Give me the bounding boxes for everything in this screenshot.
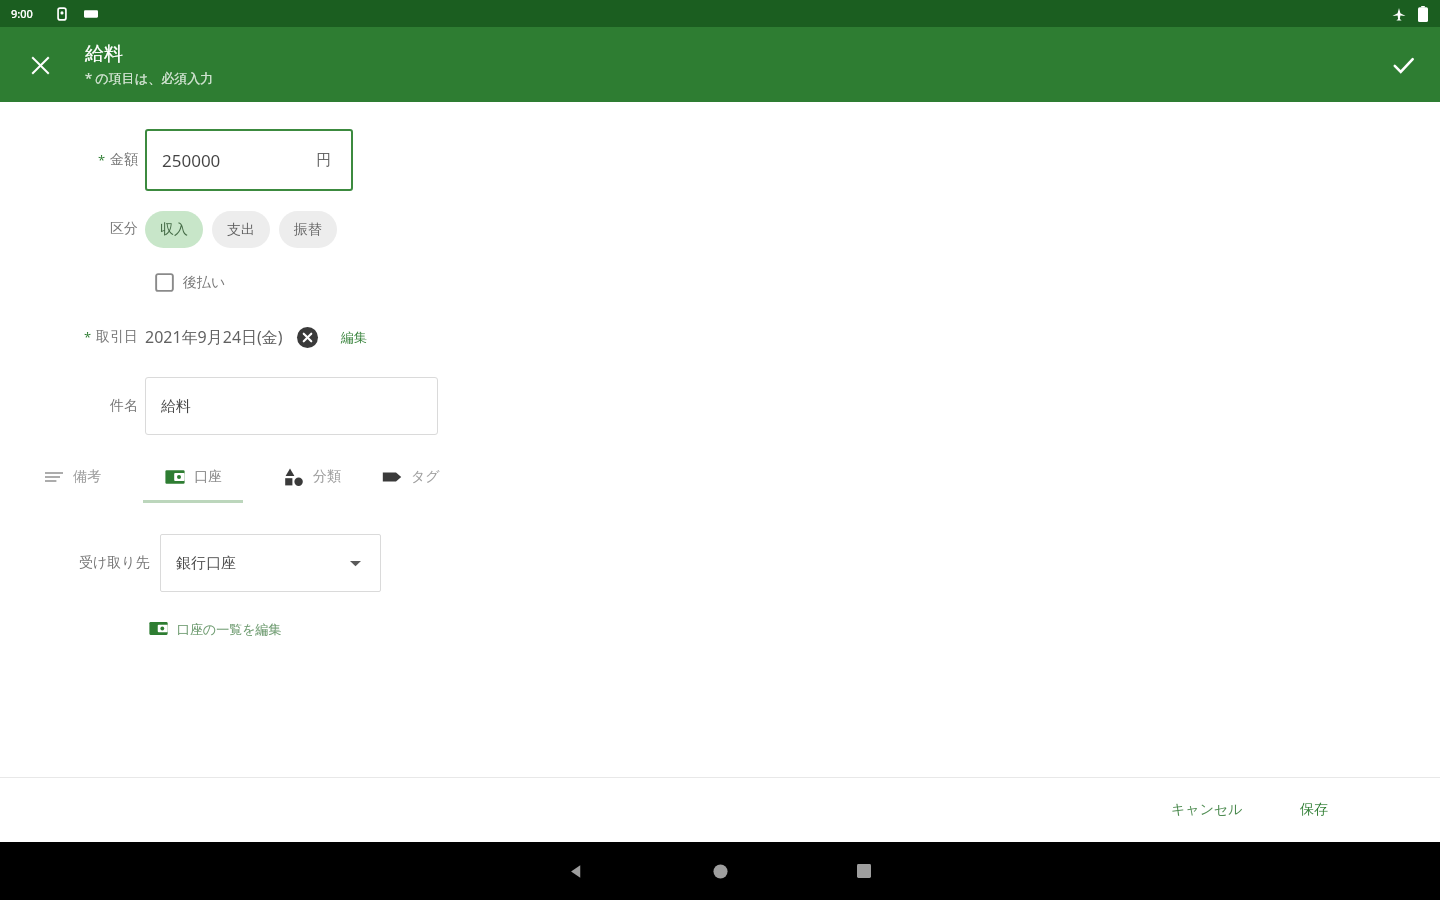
- staticText: 250000: [162, 149, 221, 172]
- staticText: 収入: [160, 221, 188, 239]
- staticText: 金額: [110, 151, 138, 169]
- button[interactable]: 備考: [42, 463, 103, 491]
- staticText: * の項目は、必須入力: [85, 69, 214, 87]
- button[interactable]: キャンセル: [1157, 791, 1257, 829]
- button[interactable]: 口座: [163, 463, 224, 491]
- staticText: 保存: [1300, 801, 1328, 819]
- staticText: 円: [316, 151, 331, 170]
- staticText: 口座: [194, 468, 222, 486]
- staticText: 給料: [85, 42, 123, 66]
- button[interactable]: 2021年9月24日(金): [145, 326, 283, 348]
- button[interactable]: Save: [1380, 42, 1426, 88]
- staticText: 件名: [110, 397, 138, 415]
- staticText: 口座の一覧を編集: [177, 621, 282, 637]
- staticText: 備考: [73, 468, 101, 486]
- button[interactable]: Back: [554, 849, 598, 893]
- button[interactable]: 支出: [212, 211, 270, 248]
- button[interactable]: Clear date: [295, 325, 319, 349]
- staticText: *: [84, 328, 92, 346]
- staticText: 振替: [294, 221, 322, 239]
- staticText: 取引日: [96, 328, 138, 346]
- staticText: 支出: [227, 221, 255, 239]
- staticText: 分類: [313, 468, 341, 486]
- button[interactable]: 銀行口座: [160, 534, 381, 592]
- button[interactable]: 編集: [341, 329, 367, 345]
- button[interactable]: 給料: [145, 377, 438, 435]
- staticText: 受け取り先: [79, 554, 150, 572]
- staticText: タグ: [411, 468, 440, 486]
- button[interactable]: 振替: [279, 211, 337, 248]
- button[interactable]: 分類: [282, 463, 343, 491]
- button[interactable]: Recents: [842, 849, 886, 893]
- button[interactable]: タグ: [380, 463, 442, 491]
- staticText: *: [98, 151, 106, 169]
- staticText: キャンセル: [1171, 801, 1243, 819]
- staticText: 区分: [110, 220, 138, 238]
- staticText: 後払い: [183, 274, 226, 292]
- button[interactable]: 収入: [145, 211, 203, 248]
- button[interactable]: Close: [17, 42, 63, 88]
- button[interactable]: 250000: [145, 129, 353, 191]
- staticText: 給料: [161, 397, 191, 416]
- button[interactable]: 口座の一覧を編集: [145, 613, 286, 644]
- button[interactable]: 後払い: [155, 273, 226, 292]
- staticText: 銀行口座: [176, 554, 236, 573]
- staticText: 9:00: [11, 6, 33, 21]
- button[interactable]: 保存: [1286, 791, 1342, 829]
- staticText: 編集: [341, 329, 367, 345]
- button[interactable]: Home: [698, 849, 742, 893]
